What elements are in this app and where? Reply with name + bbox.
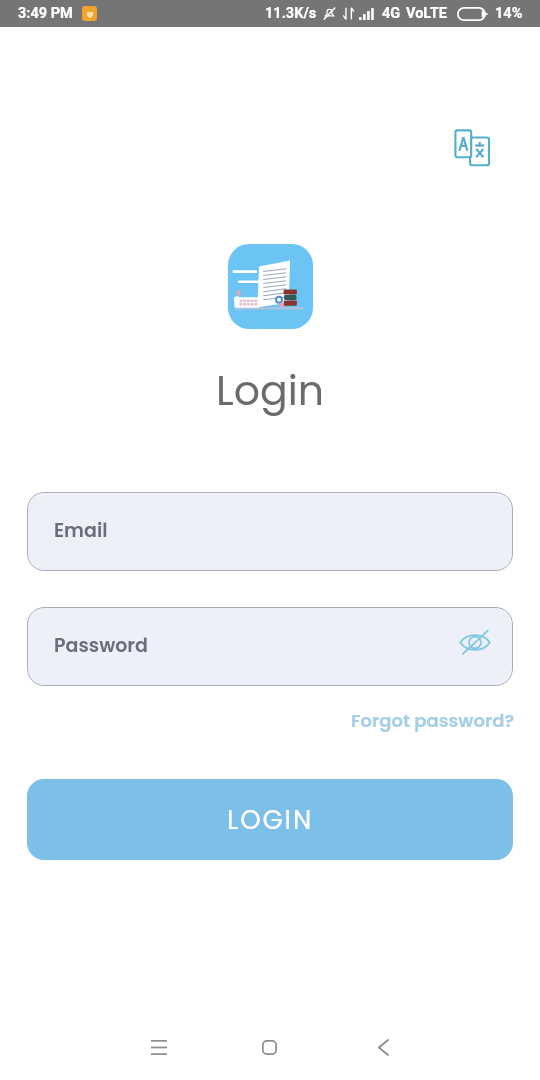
button[interactable]: Forgot password? — [341, 702, 525, 739]
button[interactable]: Change language — [444, 120, 500, 176]
button[interactable]: Password — [27, 607, 513, 686]
staticText: Forgot password? — [351, 708, 515, 733]
staticText: Password — [54, 632, 148, 659]
staticText: 14% — [495, 5, 523, 22]
staticText: LOGIN — [227, 802, 314, 838]
staticText: 3:49 PM — [18, 5, 73, 22]
staticText: 4G — [382, 5, 401, 22]
staticText: Login — [216, 362, 324, 419]
button[interactable]: Back — [359, 1023, 407, 1071]
button[interactable]: LOGIN — [27, 779, 513, 860]
button[interactable]: Recent apps — [135, 1023, 183, 1071]
staticText: 11.3K/s — [265, 5, 317, 22]
staticText: VoLTE — [406, 5, 447, 22]
button[interactable]: Show password — [453, 620, 497, 664]
staticText: Email — [54, 517, 108, 544]
button[interactable]: Email — [27, 492, 513, 571]
button[interactable]: Home — [245, 1023, 293, 1071]
